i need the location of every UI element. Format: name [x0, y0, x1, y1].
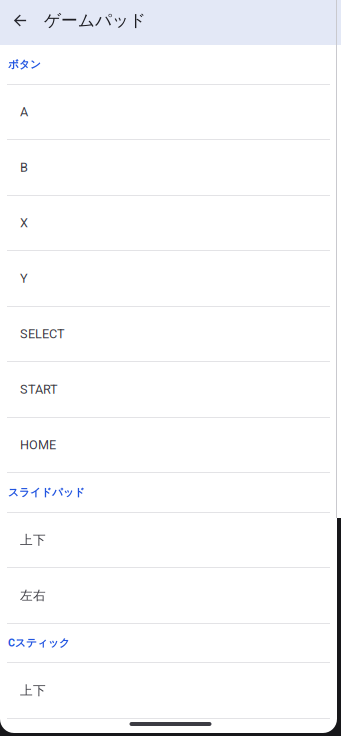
button[interactable]: 上下 — [0, 513, 341, 567]
staticText: ゲームパッド — [44, 10, 146, 31]
button[interactable]: 上下 — [0, 663, 341, 718]
staticText: 上下 — [20, 682, 46, 698]
staticText: START — [20, 382, 58, 397]
staticText: 上下 — [20, 532, 46, 548]
button[interactable]: B — [0, 140, 341, 195]
button[interactable]: SELECT — [0, 307, 341, 361]
button[interactable]: Y — [0, 251, 341, 306]
button[interactable]: Back — [6, 0, 34, 41]
button[interactable]: A — [0, 85, 341, 139]
staticText: HOME — [20, 438, 56, 452]
staticText: SELECT — [20, 327, 65, 341]
staticText: A — [20, 105, 28, 119]
staticText: 左右 — [20, 587, 46, 603]
staticText: Cスティック — [8, 636, 70, 650]
staticText: B — [20, 160, 28, 175]
button[interactable]: HOME — [0, 418, 341, 472]
button[interactable]: X — [0, 196, 341, 250]
staticText: ボタン — [8, 58, 41, 71]
staticText: スライドパッド — [8, 486, 85, 499]
button[interactable]: 左右 — [0, 568, 341, 623]
staticText: Y — [20, 271, 28, 286]
staticText: X — [20, 216, 28, 230]
button[interactable]: START — [0, 362, 341, 417]
